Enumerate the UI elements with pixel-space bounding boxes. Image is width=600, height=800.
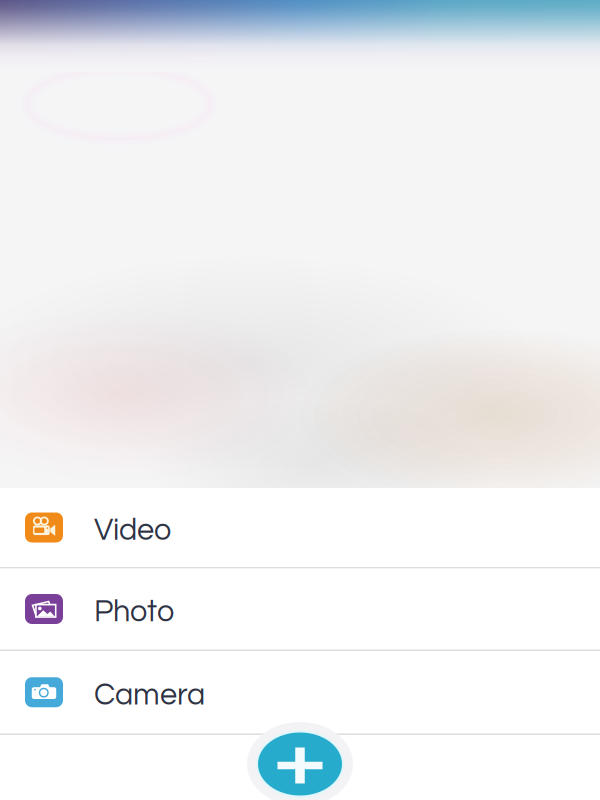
button[interactable]: Photo: [0, 568, 600, 649]
button[interactable]: Camera: [0, 651, 600, 733]
button[interactable]: Add: [247, 722, 353, 800]
staticText: Camera: [94, 679, 205, 711]
staticText: Video: [94, 515, 171, 546]
staticText: Photo: [94, 596, 174, 628]
button[interactable]: Video: [0, 488, 600, 567]
